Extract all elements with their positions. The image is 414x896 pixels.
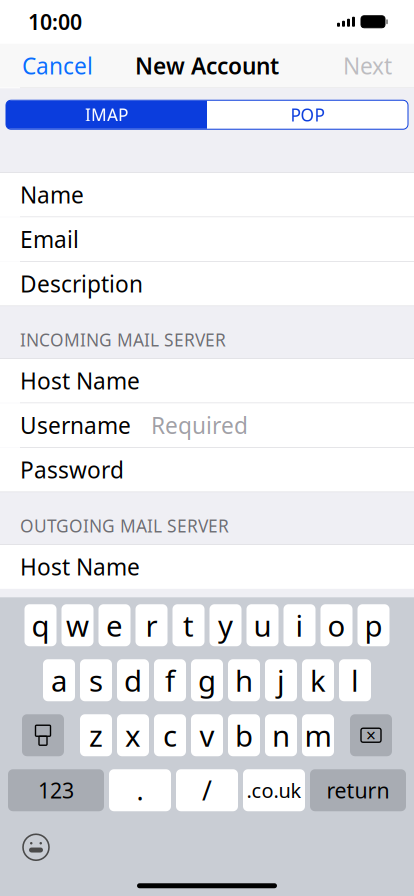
button[interactable]: IMAP bbox=[6, 101, 207, 129]
button[interactable]: m bbox=[302, 714, 334, 756]
button[interactable]: a bbox=[43, 659, 75, 701]
button[interactable]: p bbox=[357, 604, 389, 646]
button[interactable]: o bbox=[320, 604, 352, 646]
button[interactable]: u bbox=[246, 604, 278, 646]
button[interactable]: k bbox=[302, 659, 334, 701]
button[interactable]: w bbox=[61, 604, 93, 646]
staticText: Host Name bbox=[20, 552, 140, 582]
button[interactable]: 123 bbox=[8, 769, 104, 811]
staticText: POP bbox=[290, 103, 324, 126]
button[interactable]: Email bbox=[0, 217, 414, 261]
staticText: Name bbox=[20, 180, 84, 210]
staticText: New Account bbox=[135, 51, 279, 81]
button[interactable]: b bbox=[228, 714, 260, 756]
staticText: / bbox=[202, 772, 212, 808]
button[interactable]: g bbox=[191, 659, 223, 701]
staticText: n bbox=[272, 716, 290, 755]
button[interactable]: j bbox=[265, 659, 297, 701]
button[interactable]: l bbox=[339, 659, 371, 701]
button[interactable]: . bbox=[109, 769, 171, 811]
staticText: g bbox=[198, 661, 216, 700]
button[interactable]: x bbox=[117, 714, 149, 756]
button[interactable]: y bbox=[209, 604, 241, 646]
staticText: r bbox=[145, 606, 157, 645]
staticText: return bbox=[326, 776, 389, 804]
button[interactable]: Shift bbox=[22, 714, 64, 756]
button[interactable]: Host Name bbox=[0, 545, 414, 589]
button[interactable]: v bbox=[191, 714, 223, 756]
staticText: 10:00 bbox=[28, 8, 82, 36]
staticText: Required bbox=[151, 410, 248, 440]
button[interactable]: Description bbox=[0, 262, 414, 306]
staticText: Password bbox=[20, 455, 124, 485]
staticText: t bbox=[183, 606, 194, 645]
button[interactable]: s bbox=[80, 659, 112, 701]
staticText: x bbox=[125, 716, 141, 755]
staticText: u bbox=[253, 606, 271, 645]
staticText: . bbox=[136, 772, 143, 808]
staticText: Email bbox=[20, 224, 79, 254]
staticText: a bbox=[51, 661, 67, 700]
button[interactable]: Emoji bbox=[20, 831, 52, 863]
staticText: v bbox=[199, 716, 214, 755]
staticText: IMAP bbox=[85, 103, 128, 126]
staticText: z bbox=[89, 716, 103, 755]
button[interactable]: Cancel bbox=[6, 44, 109, 88]
staticText: Cancel bbox=[22, 51, 93, 81]
staticText: Host Name bbox=[20, 366, 140, 396]
button[interactable]: POP bbox=[207, 101, 408, 129]
staticText: l bbox=[351, 661, 359, 700]
staticText: i bbox=[295, 606, 303, 645]
staticText: f bbox=[165, 661, 175, 700]
staticText: e bbox=[106, 606, 123, 645]
staticText: INCOMING MAIL SERVER bbox=[20, 328, 226, 351]
button[interactable]: Delete bbox=[350, 714, 392, 756]
staticText: .co.uk bbox=[246, 777, 301, 804]
button[interactable]: n bbox=[265, 714, 297, 756]
button[interactable]: Username bbox=[0, 403, 414, 447]
button[interactable]: r bbox=[135, 604, 167, 646]
button[interactable]: / bbox=[176, 769, 238, 811]
button[interactable]: t bbox=[172, 604, 204, 646]
button[interactable]: c bbox=[154, 714, 186, 756]
button[interactable]: i bbox=[283, 604, 315, 646]
button[interactable]: Name bbox=[0, 173, 414, 217]
button[interactable]: h bbox=[228, 659, 260, 701]
staticText: c bbox=[163, 716, 177, 755]
staticText: OUTGOING MAIL SERVER bbox=[20, 514, 229, 537]
staticText: 123 bbox=[38, 776, 74, 804]
staticText: Description bbox=[20, 269, 143, 299]
button[interactable]: .co.uk bbox=[243, 769, 305, 811]
staticText: w bbox=[66, 606, 89, 645]
staticText: k bbox=[310, 661, 326, 700]
staticText: Next bbox=[343, 51, 392, 81]
button[interactable]: Next bbox=[327, 44, 408, 88]
button[interactable]: Password bbox=[0, 448, 414, 492]
staticText: y bbox=[218, 606, 233, 645]
staticText: Username bbox=[20, 410, 131, 440]
staticText: h bbox=[235, 661, 253, 700]
button[interactable]: e bbox=[98, 604, 130, 646]
staticText: q bbox=[31, 606, 49, 645]
staticText: p bbox=[364, 606, 382, 645]
button[interactable]: f bbox=[154, 659, 186, 701]
staticText: o bbox=[327, 606, 345, 645]
staticText: m bbox=[304, 716, 331, 755]
staticText: d bbox=[124, 661, 142, 700]
button[interactable]: d bbox=[117, 659, 149, 701]
staticText: j bbox=[277, 661, 285, 700]
staticText: s bbox=[89, 661, 103, 700]
button[interactable]: q bbox=[24, 604, 56, 646]
staticText: b bbox=[235, 716, 253, 755]
button[interactable]: Host Name bbox=[0, 359, 414, 403]
button[interactable]: return bbox=[310, 769, 406, 811]
button[interactable]: z bbox=[80, 714, 112, 756]
staticText: × bbox=[366, 724, 376, 747]
